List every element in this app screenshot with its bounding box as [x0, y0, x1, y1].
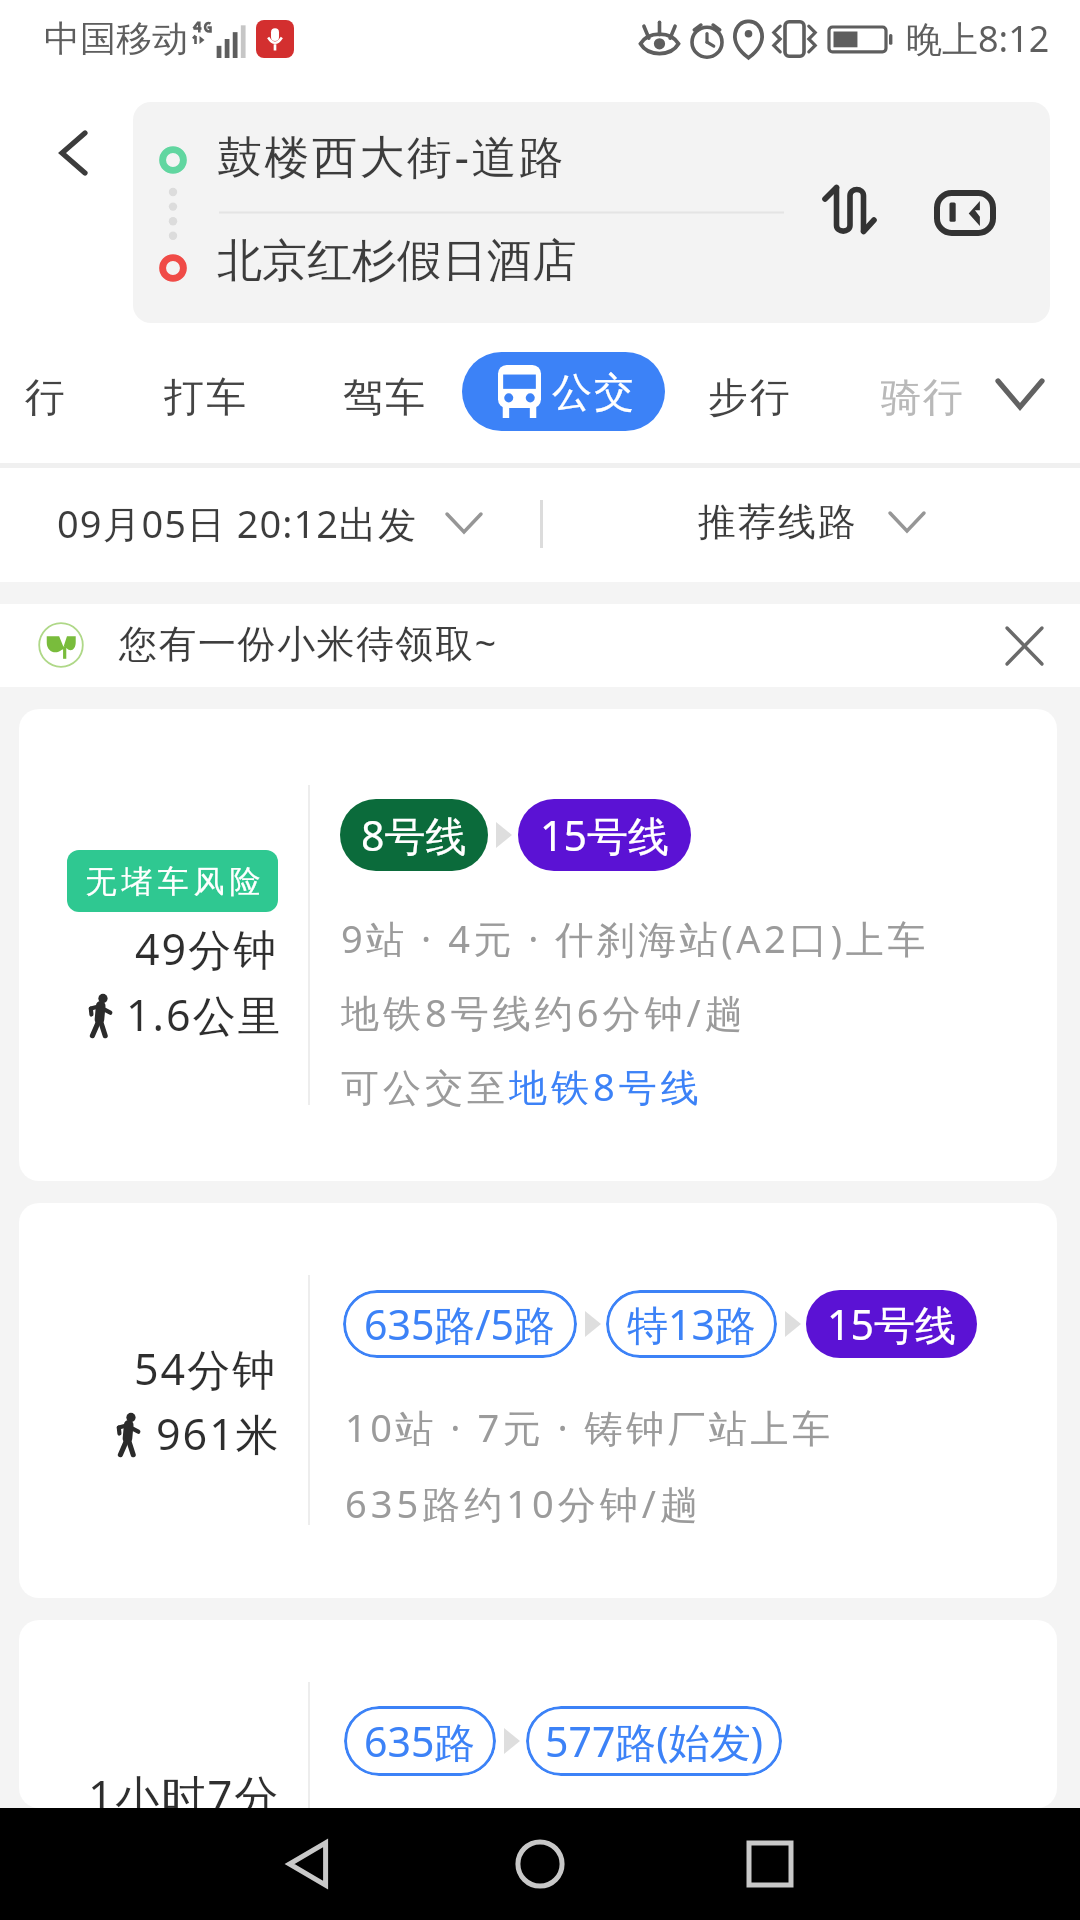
staticText: 577路(始发)	[545, 1713, 763, 1769]
staticText: 驾车	[342, 372, 426, 422]
staticText: 可公交至地铁8号线	[341, 1060, 703, 1112]
button[interactable]: 骑行	[876, 368, 968, 426]
button[interactable]: Back	[28, 108, 118, 198]
staticText: 晚上8:12	[906, 14, 1050, 63]
staticText: 635路约10分钟/趟	[345, 1477, 702, 1529]
staticText: 635路	[364, 1713, 476, 1769]
button[interactable]: Swap origin and destination	[803, 164, 895, 256]
staticText: 北京红杉假日酒店	[217, 233, 577, 290]
staticText: 打车	[163, 372, 247, 422]
button[interactable]: 无堵车风险	[19, 709, 1057, 1181]
staticText: 961米	[156, 1404, 281, 1463]
staticText: 1小时7分	[88, 1765, 281, 1808]
button[interactable]: 09月05日 20:12出发	[57, 491, 481, 555]
staticText: 54分钟	[134, 1339, 278, 1398]
staticText: 09月05日 20:12出发	[57, 497, 417, 549]
staticText: 635路/5路	[364, 1296, 556, 1352]
button[interactable]: More travel modes	[982, 356, 1058, 432]
button[interactable]: Home	[500, 1808, 580, 1920]
staticText: 1.6公里	[126, 985, 283, 1044]
staticText: 无堵车风险	[83, 862, 263, 901]
button[interactable]: 打车	[159, 368, 251, 426]
button[interactable]: 公交	[462, 352, 665, 431]
staticText: 15号线	[540, 807, 669, 863]
button[interactable]: Route preference	[919, 167, 1011, 259]
staticText: 特13路	[627, 1296, 756, 1352]
staticText: 8号线	[361, 807, 467, 863]
button[interactable]: 行	[20, 368, 70, 426]
staticText: 地铁8号线约6分钟/趟	[341, 986, 747, 1038]
button[interactable]: Close	[986, 608, 1062, 684]
staticText: 中国移动	[44, 16, 188, 61]
button[interactable]: Back	[268, 1808, 348, 1920]
staticText: 15号线	[827, 1296, 956, 1352]
button[interactable]: 您有一份小米待领取~	[0, 604, 1080, 687]
button[interactable]: 54分钟	[19, 1203, 1057, 1598]
button[interactable]: 鼓楼西大街-道路	[133, 102, 1050, 323]
staticText: 推荐线路	[697, 498, 857, 546]
staticText: 您有一份小米待领取~	[119, 616, 498, 668]
button[interactable]: 1小时7分	[19, 1620, 1057, 1808]
button[interactable]: 步行	[703, 368, 795, 426]
staticText: 公交	[551, 367, 635, 417]
staticText: 行	[24, 372, 66, 422]
staticText: 49分钟	[135, 919, 279, 978]
staticText: 骑行	[880, 372, 964, 422]
staticText: 10站 · 7元 · 铸钟厂站上车	[345, 1401, 834, 1453]
button[interactable]: Recent apps	[730, 1808, 810, 1920]
button[interactable]: 驾车	[338, 368, 430, 426]
staticText: 9站 · 4元 · 什刹海站(A2口)上车	[341, 912, 929, 964]
staticText: 步行	[707, 372, 791, 422]
staticText: 鼓楼西大街-道路	[217, 125, 567, 186]
button[interactable]: 推荐线路	[697, 492, 924, 552]
